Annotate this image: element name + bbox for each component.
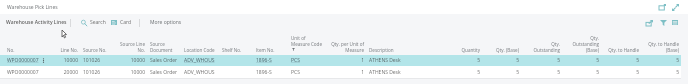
staticText: ADV_WHOUSE xyxy=(184,57,216,64)
staticText: Qty. Outstanding (Base) xyxy=(565,35,599,53)
staticText: Source Document xyxy=(150,41,179,53)
button[interactable]: WPO0000007 xyxy=(0,66,681,78)
staticText: Line No. xyxy=(53,47,78,53)
button[interactable]: Description xyxy=(369,47,439,53)
staticText: WPO0000007 xyxy=(7,69,47,76)
staticText: Card xyxy=(120,19,132,26)
staticText: Description xyxy=(369,47,439,53)
staticText: 1896-S xyxy=(256,57,286,64)
button[interactable]: Shelf No. xyxy=(222,47,250,53)
staticText: 10000 xyxy=(113,69,145,76)
staticText: 10000 xyxy=(53,57,78,64)
staticText: 101026 xyxy=(83,69,108,76)
staticText: Warehouse Pick Lines xyxy=(7,4,58,11)
staticText: Qty. (Base) xyxy=(485,47,519,53)
staticText: 1 xyxy=(331,57,364,64)
button[interactable]: Card xyxy=(109,16,134,29)
button[interactable]: Qty. to Handle (Base) xyxy=(645,41,679,53)
button[interactable]: Warehouse Activity Lines xyxy=(4,16,69,29)
button[interactable]: WPO0000007 xyxy=(0,55,681,66)
staticText: Quantity xyxy=(445,47,480,53)
button[interactable]: No. xyxy=(7,47,47,53)
staticText: 5 xyxy=(605,57,639,64)
staticText: 5 xyxy=(565,57,599,64)
staticText: 5 xyxy=(645,57,679,64)
button[interactable]: Source Document xyxy=(150,41,179,53)
staticText: 1 xyxy=(331,69,364,76)
staticText: Sales Order xyxy=(150,69,179,76)
staticText: 5 xyxy=(525,69,560,76)
button[interactable]: Row options xyxy=(39,55,48,66)
button[interactable]: Open in new window xyxy=(657,0,668,14)
button[interactable]: Line No. xyxy=(53,47,78,53)
button[interactable]: Filter xyxy=(657,14,669,31)
button[interactable]: Item No. xyxy=(256,47,286,53)
staticText: PCS xyxy=(291,57,326,64)
button[interactable]: Open in Excel xyxy=(643,14,655,31)
staticText: 5 xyxy=(485,57,519,64)
staticText: 5 xyxy=(445,69,480,76)
button[interactable]: Qty. (Base) xyxy=(485,47,519,53)
staticText: 5 xyxy=(445,57,480,64)
staticText: Shelf No. xyxy=(222,47,250,53)
button[interactable]: Qty. per Unit of Measure xyxy=(331,41,364,53)
button[interactable]: Quantity xyxy=(445,47,480,53)
staticText: ATHENS Desk xyxy=(369,69,439,76)
button[interactable]: Unit of Measure Code xyxy=(291,35,326,53)
staticText: 5 xyxy=(565,69,599,76)
staticText: Qty. to Handle xyxy=(605,47,639,53)
staticText: 5 xyxy=(525,57,560,64)
button[interactable]: Search xyxy=(79,16,108,29)
staticText: Unit of Measure Code xyxy=(291,35,326,53)
staticText: WPO0000007 xyxy=(7,57,47,64)
staticText: Source Line No. xyxy=(113,41,145,53)
staticText: 20000 xyxy=(53,69,78,76)
button[interactable]: Source Line No. xyxy=(113,41,145,53)
button[interactable]: Location Code xyxy=(184,47,216,53)
staticText: Qty. Outstanding xyxy=(525,41,560,53)
staticText: 5 xyxy=(645,69,679,76)
staticText: More options xyxy=(150,19,182,26)
staticText: Qty. to Handle (Base) xyxy=(645,41,679,53)
staticText: Qty. per Unit of Measure xyxy=(331,41,364,53)
staticText: 5 xyxy=(485,69,519,76)
staticText: Location Code xyxy=(184,47,216,53)
staticText: PCS xyxy=(291,69,326,76)
button[interactable]: Qty. Outstanding xyxy=(525,41,560,53)
button[interactable]: Qty. Outstanding (Base) xyxy=(565,35,599,53)
button[interactable]: Expand xyxy=(669,0,681,14)
staticText: ATHENS Desk xyxy=(369,57,439,64)
button[interactable]: More options xyxy=(148,16,184,29)
button[interactable]: Qty. to Handle xyxy=(605,47,639,53)
staticText: 10000 xyxy=(113,57,145,64)
staticText: 1896-S xyxy=(256,69,286,76)
staticText: Search xyxy=(90,19,106,26)
staticText: Item No. xyxy=(256,47,286,53)
staticText: 5 xyxy=(605,69,639,76)
button[interactable]: Source No. xyxy=(83,47,108,53)
staticText: Source No. xyxy=(83,47,108,53)
button[interactable]: Choose columns xyxy=(669,14,681,31)
staticText: Warehouse Activity Lines xyxy=(6,19,67,26)
staticText: Sales Order xyxy=(150,57,179,64)
staticText: No. xyxy=(7,47,47,53)
staticText: ADV_WHOUSE xyxy=(184,69,216,76)
staticText: 101026 xyxy=(83,57,108,64)
